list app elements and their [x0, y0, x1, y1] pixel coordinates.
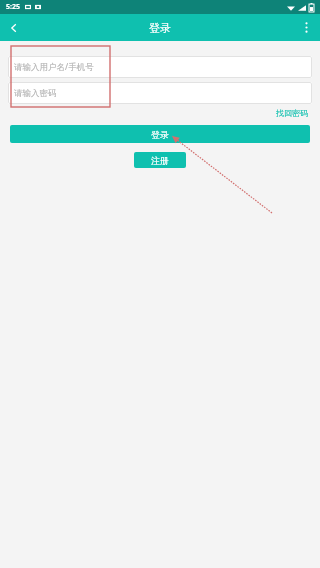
- staticText: 登录: [149, 21, 171, 35]
- staticText: 5:25: [6, 2, 20, 12]
- button[interactable]: 注册: [134, 152, 186, 168]
- staticText: 请输入用户名/手机号: [14, 61, 94, 73]
- button[interactable]: 登录: [10, 125, 310, 143]
- button[interactable]: 请输入密码: [8, 82, 312, 104]
- button[interactable]: 找回密码: [274, 106, 310, 120]
- staticText: 登录: [151, 129, 169, 140]
- staticText: 请输入密码: [14, 88, 57, 99]
- staticText: 注册: [151, 155, 169, 166]
- button[interactable]: More options: [293, 14, 320, 41]
- staticText: 找回密码: [276, 108, 308, 118]
- button[interactable]: 请输入用户名/手机号: [8, 56, 312, 78]
- button[interactable]: Back: [0, 14, 27, 41]
